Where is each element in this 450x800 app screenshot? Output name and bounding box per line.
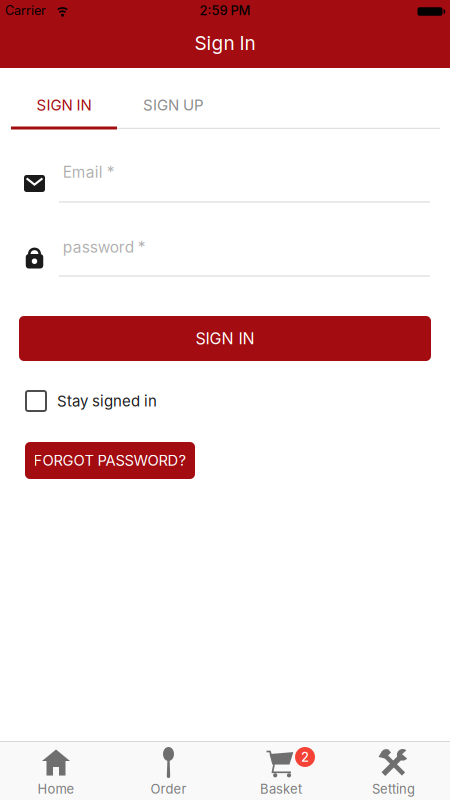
button[interactable]: FORGOT PASSWORD?	[25, 442, 195, 479]
staticText: Order	[150, 781, 186, 797]
staticText: Carrier	[5, 3, 46, 18]
staticText: password *	[63, 238, 146, 256]
button[interactable]: SIGN IN	[11, 76, 117, 133]
staticText: SIGN IN	[195, 329, 254, 348]
button[interactable]: Home	[0, 742, 112, 800]
button[interactable]: SIGN UP	[120, 76, 227, 133]
button[interactable]: 2	[225, 742, 337, 800]
staticText: SIGN UP	[143, 96, 204, 114]
staticText: SIGN IN	[36, 96, 91, 114]
staticText: FORGOT PASSWORD?	[33, 452, 186, 469]
staticText: Email *	[63, 163, 115, 181]
button[interactable]: Setting	[337, 742, 449, 800]
staticText: Stay signed in	[57, 392, 157, 410]
staticText: Setting	[372, 781, 415, 797]
button[interactable]: SIGN IN	[19, 316, 431, 361]
button[interactable]: Order	[112, 742, 224, 800]
staticText: 2	[301, 749, 309, 765]
staticText: 2:59 PM	[199, 3, 250, 18]
staticText: Home	[37, 781, 74, 797]
staticText: Basket	[260, 781, 302, 797]
button[interactable]: Stay signed in	[26, 386, 226, 416]
staticText: Sign In	[194, 31, 255, 54]
